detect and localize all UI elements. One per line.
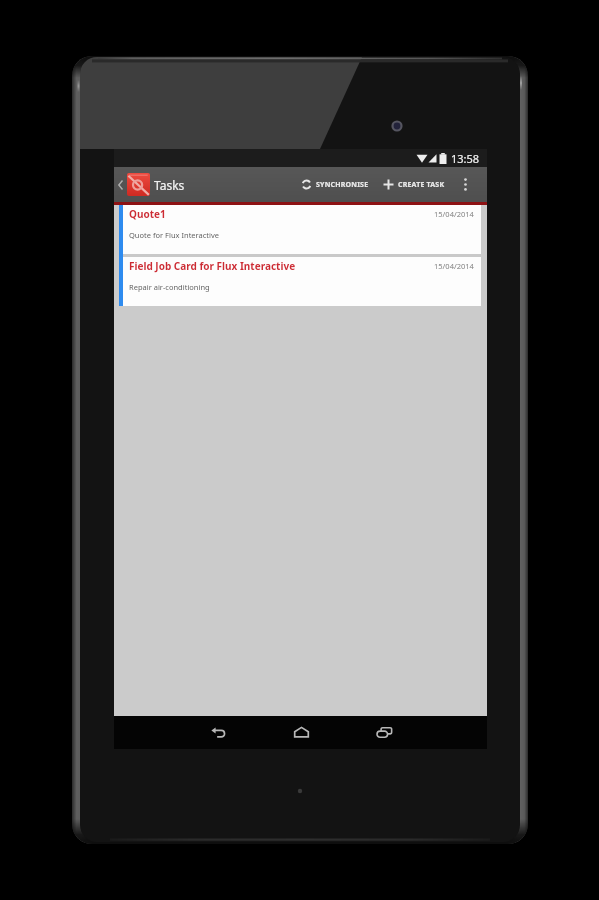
button[interactable]: Synchronise <box>294 167 376 202</box>
button[interactable]: App icon <box>127 173 150 196</box>
button[interactable]: Back <box>192 716 244 749</box>
staticText: 13:58 <box>451 151 480 166</box>
button[interactable]: More options <box>452 167 478 202</box>
button[interactable]: Navigate up <box>114 167 127 202</box>
staticText: 15/04/2014 <box>434 209 474 219</box>
button[interactable]: Field Job Card for Flux Interactive <box>119 257 481 306</box>
button[interactable]: Quote1 <box>119 205 481 254</box>
button[interactable]: Home <box>275 716 327 749</box>
button[interactable]: Recent apps <box>358 716 410 749</box>
staticText: Field Job Card for Flux Interactive <box>129 259 296 273</box>
button[interactable]: Create task <box>376 167 452 202</box>
staticText: Quote1 <box>129 207 166 221</box>
staticText: 15/04/2014 <box>434 261 474 271</box>
staticText: Quote for Flux Interactive <box>129 230 220 240</box>
staticText: CREATE TASK <box>398 180 445 190</box>
staticText: Tasks <box>154 177 185 193</box>
staticText: Repair air-conditioning <box>129 282 210 292</box>
staticText: SYNCHRONISE <box>316 180 369 190</box>
